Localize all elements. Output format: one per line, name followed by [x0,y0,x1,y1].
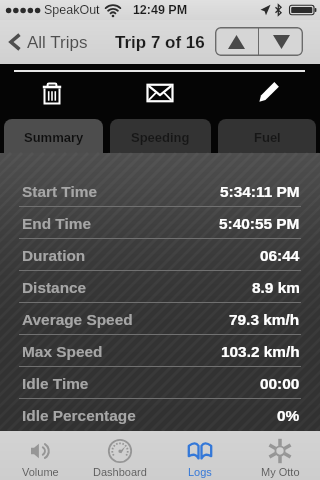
staticText: Start Time [22,183,97,200]
staticText: Average Speed [22,311,133,328]
staticText: Distance [22,279,87,296]
staticText: Duration [22,247,86,264]
staticText: Idle Percentage [22,407,136,424]
button[interactable]: Delete [25,73,79,113]
button[interactable]: Average Speed [0,303,320,335]
button[interactable]: Idle Percentage [0,399,320,431]
button[interactable]: Logs [160,431,240,480]
button[interactable]: All Trips [0,20,98,64]
staticText: All Trips [27,33,88,52]
staticText: 8.9 km [252,279,300,296]
staticText: 06:44 [260,247,300,264]
staticText: 79.3 km/h [229,311,300,328]
button[interactable]: Max Speed [0,335,320,367]
staticText: Summary [24,130,84,145]
staticText: 103.2 km/h [221,343,300,360]
staticText: Volume [22,466,59,478]
button[interactable]: Email [133,73,187,113]
staticText: 12:49 PM [0,3,320,17]
button[interactable]: Dashboard [80,431,160,480]
button[interactable]: Start Time [0,175,320,207]
staticText: SpeakOut [44,3,100,17]
button[interactable]: Previous trip [215,27,258,56]
button[interactable]: Speeding [110,119,211,153]
staticText: Idle Time [22,375,89,392]
staticText: Trip 7 of 16 [115,33,205,52]
staticText: Speeding [131,130,190,145]
button[interactable]: Fuel [218,119,316,153]
button[interactable]: Summary [4,119,103,153]
button[interactable]: My Otto [240,431,320,480]
button[interactable]: Volume [0,431,80,480]
staticText: Dashboard [93,466,147,478]
staticText: Logs [188,466,212,478]
staticText: Fuel [254,130,281,145]
button[interactable]: Distance [0,271,320,303]
staticText: Max Speed [22,343,103,360]
button[interactable]: Idle Time [0,367,320,399]
button[interactable]: Edit [241,73,295,113]
staticText: 00:00 [260,375,300,392]
staticText: End Time [22,215,91,232]
button[interactable]: Next trip [259,27,303,56]
staticText: 0% [277,407,300,424]
button[interactable]: Duration [0,239,320,271]
staticText: My Otto [261,466,300,478]
button[interactable]: End Time [0,207,320,239]
staticText: 5:34:11 PM [220,183,300,200]
staticText: 5:40:55 PM [219,215,300,232]
